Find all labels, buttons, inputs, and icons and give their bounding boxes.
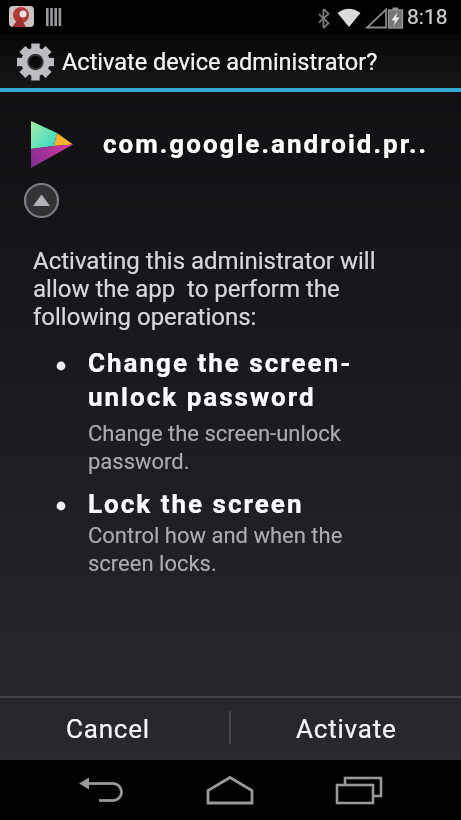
button[interactable] xyxy=(204,770,256,810)
button[interactable] xyxy=(23,182,60,219)
button[interactable] xyxy=(334,770,386,810)
staticText: Activate device administrator? xyxy=(62,48,378,76)
staticText: Change the screen-unlock password. xyxy=(88,421,341,475)
staticText: Lock the screen xyxy=(88,489,304,519)
button[interactable] xyxy=(75,770,127,810)
staticText: Control how and when the screen locks. xyxy=(88,523,343,577)
staticText: Activate xyxy=(296,714,397,744)
staticText: Change the screen- unlock password xyxy=(88,348,353,412)
staticText: 8:18 xyxy=(407,5,448,30)
button[interactable]: Activate xyxy=(231,698,461,760)
button[interactable]: Cancel xyxy=(0,698,223,760)
staticText: Activating this administrator will allow… xyxy=(33,247,376,331)
staticText: com.google.android.pr.. xyxy=(103,129,429,159)
staticText: Cancel xyxy=(66,714,150,744)
